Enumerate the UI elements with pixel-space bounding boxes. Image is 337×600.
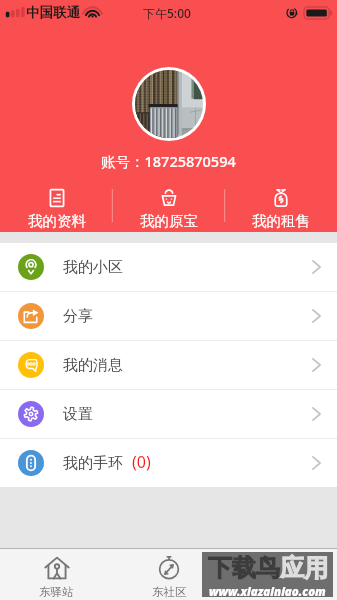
button[interactable]: 我的小区 [0,243,337,291]
staticText: 账号：18725870594 [101,151,236,171]
staticText: 我的消息 [63,356,123,375]
staticText: www.xiazainiao.com [209,584,326,597]
button[interactable]: 设置 [0,390,337,438]
staticText: 设置 [63,405,93,424]
button[interactable]: 我的 [225,549,337,600]
staticText: 中国联通 [26,4,80,21]
button[interactable]: 我的租售 [225,180,337,232]
staticText: 我的小区 [63,258,123,277]
staticText: 我的租售 [252,212,310,230]
staticText: 我的手环 [63,454,123,473]
button[interactable]: 东社区 [113,549,225,600]
staticText: 我的原宝 [140,212,198,230]
staticText: (0) [132,451,151,473]
button[interactable]: 我的资料 [0,180,113,232]
staticText: 下午5:00 [143,5,191,21]
staticText: 东驿站 [39,585,74,599]
button[interactable]: 我的消息 [0,341,337,389]
staticText: 分享 [63,307,93,326]
staticText: 下载鸟 [208,553,280,583]
staticText: 应用 [280,553,328,583]
button[interactable]: 东驿站 [0,549,113,600]
staticText: 我的资料 [28,212,86,230]
staticText: 东社区 [152,585,187,599]
staticText: 我的 [270,585,293,599]
button[interactable]: 我的手环 [0,439,337,487]
button[interactable]: 我的原宝 [113,180,225,232]
button[interactable]: 分享 [0,292,337,340]
